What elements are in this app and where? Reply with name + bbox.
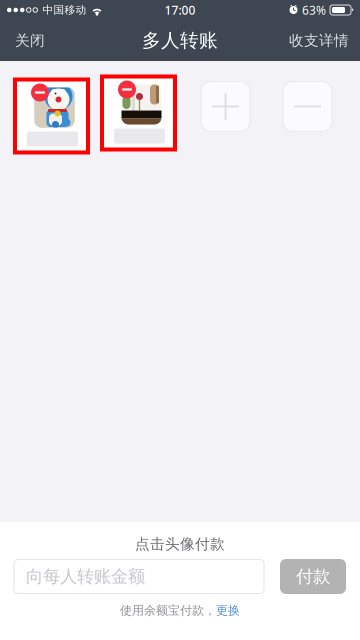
button[interactable]: Add recipient	[201, 81, 250, 131]
staticText: 使用余额宝付款，	[120, 603, 216, 618]
button[interactable]: Recipient	[100, 74, 177, 151]
staticText: 点击头像付款	[135, 535, 225, 553]
staticText: 向每人转账金额	[26, 566, 145, 587]
button[interactable]: 关闭	[0, 20, 57, 61]
button[interactable]: Remove recipient	[283, 81, 332, 131]
staticText: 更换	[216, 603, 240, 618]
button[interactable]: 付款	[280, 559, 346, 594]
staticText: 付款	[296, 566, 330, 587]
staticText: 17:00	[164, 2, 195, 18]
staticText: 中国移动	[42, 3, 86, 16]
button[interactable]: 更换	[216, 603, 240, 618]
staticText: 63%	[302, 2, 326, 18]
button[interactable]: 收支详情	[277, 20, 360, 61]
staticText: 多人转账	[142, 29, 218, 52]
staticText: 关闭	[15, 31, 45, 49]
staticText: 收支详情	[289, 31, 349, 49]
button[interactable]: Recipient	[13, 77, 90, 154]
